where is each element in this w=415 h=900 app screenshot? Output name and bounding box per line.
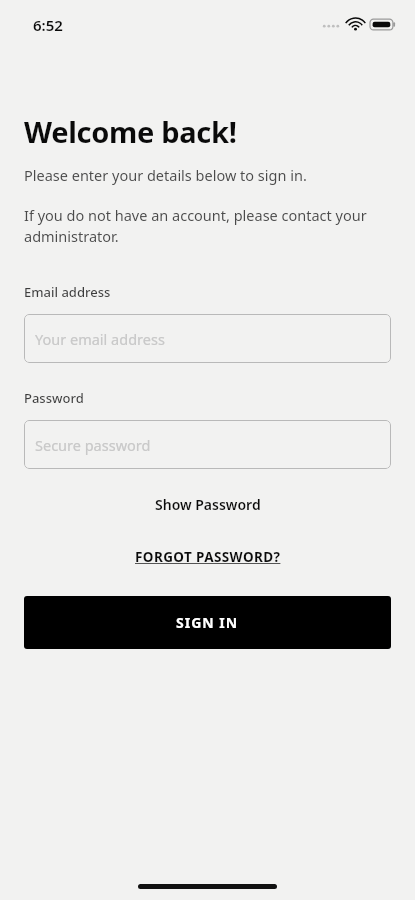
staticText: SIGN IN (176, 613, 239, 632)
staticText: FORGOT PASSWORD? (135, 548, 281, 566)
staticText: 6:52 (33, 15, 63, 35)
staticText: Please enter your details below to sign … (24, 165, 307, 185)
button[interactable]: Your email address (24, 314, 391, 363)
button[interactable]: SIGN IN (24, 596, 391, 649)
staticText: Password (24, 389, 84, 407)
staticText: Secure password (35, 435, 151, 455)
button[interactable]: Secure password (24, 420, 391, 469)
staticText: Email address (24, 283, 111, 301)
button[interactable]: Show Password (24, 489, 391, 520)
staticText: Your email address (35, 329, 165, 349)
staticText: Welcome back! (24, 112, 237, 151)
staticText: If you do not have an account, please co… (24, 205, 391, 246)
button[interactable]: FORGOT PASSWORD? (24, 542, 391, 572)
staticText: Show Password (155, 495, 261, 514)
